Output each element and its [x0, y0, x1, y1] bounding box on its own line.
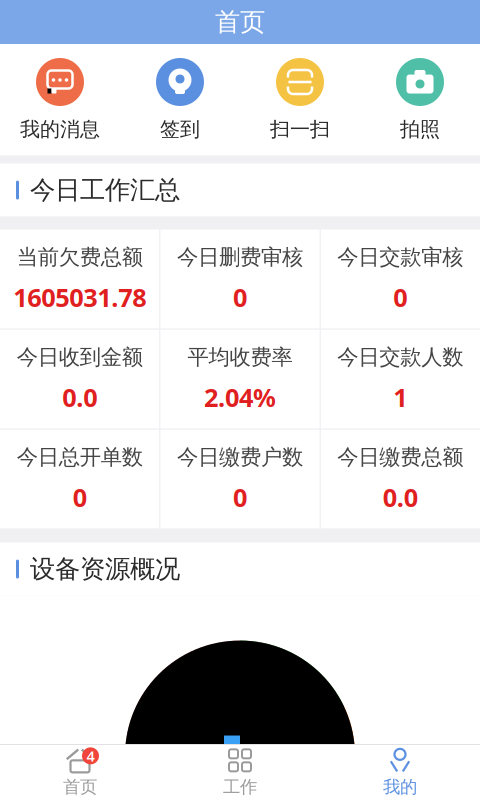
button[interactable]: 4: [0, 745, 160, 800]
button[interactable]: 拍照: [360, 58, 480, 142]
staticText: 今日缴费总额: [337, 444, 463, 470]
staticText: 首页: [215, 6, 265, 37]
staticText: 平均收费率: [187, 344, 292, 370]
staticText: 4: [86, 746, 94, 766]
button[interactable]: 扫一扫: [240, 58, 360, 142]
staticText: 我的: [383, 776, 417, 798]
staticText: 设备资源概况: [30, 553, 180, 585]
staticText: 拍照: [400, 117, 440, 142]
staticText: 首页: [63, 776, 97, 798]
staticText: 2.04%: [204, 380, 276, 414]
staticText: 0: [73, 480, 87, 514]
staticText: 今日收到金额: [17, 344, 143, 370]
button[interactable]: 我的: [320, 745, 480, 800]
staticText: 当前欠费总额: [17, 244, 143, 270]
staticText: 1: [393, 380, 407, 414]
staticText: 1605031.78: [13, 280, 146, 314]
staticText: 扫一扫: [270, 117, 330, 142]
staticText: 签到: [160, 117, 200, 142]
button[interactable]: 工作: [160, 745, 320, 800]
staticText: 0: [393, 280, 407, 314]
button[interactable]: 我的消息: [0, 58, 120, 142]
staticText: 今日总开单数: [17, 444, 143, 470]
staticText: 工作: [223, 776, 257, 798]
button[interactable]: 签到: [120, 58, 240, 142]
staticText: 0: [233, 280, 247, 314]
staticText: 今日交款人数: [337, 344, 463, 370]
staticText: 今日交款审核: [337, 244, 463, 270]
staticText: 今日工作汇总: [30, 174, 180, 206]
staticText: 0.0: [62, 380, 97, 414]
staticText: 我的消息: [20, 117, 100, 142]
staticText: 今日缴费户数: [177, 444, 303, 470]
staticText: 0: [233, 480, 247, 514]
staticText: 今日删费审核: [177, 244, 303, 270]
staticText: 0.0: [383, 480, 418, 514]
